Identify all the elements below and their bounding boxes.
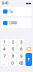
button[interactable]: 9 — [17, 53, 24, 59]
button[interactable]: 4 — [1, 46, 8, 52]
button[interactable]: Delete — [25, 46, 32, 52]
staticText: 7 — [4, 54, 6, 58]
button[interactable]: To — [1, 7, 31, 16]
staticText: To — [9, 10, 13, 13]
button[interactable]: Send — [25, 53, 32, 66]
button[interactable]: 5 — [9, 46, 16, 52]
staticText: 4 — [3, 47, 6, 51]
button[interactable]: 1 — [1, 39, 8, 45]
button[interactable]: 0 — [9, 60, 16, 66]
staticText: . — [4, 61, 5, 65]
staticText: ⌫ — [18, 61, 23, 65]
button[interactable]: 6 — [17, 46, 24, 52]
button[interactable]: 2 — [9, 39, 16, 45]
staticText: 3 — [20, 40, 22, 44]
staticText: 0 — [11, 61, 14, 65]
staticText: 6 — [20, 47, 22, 51]
staticText: 9 — [20, 54, 22, 58]
button[interactable]: 8 — [9, 53, 16, 59]
staticText: 5 — [12, 47, 14, 51]
button[interactable]: ⌫ — [17, 60, 24, 66]
button[interactable]: 7 — [1, 53, 8, 59]
staticText: 1 — [4, 40, 6, 44]
button[interactable]: 3 — [17, 39, 24, 45]
button[interactable]: 1,000 — [1, 18, 31, 28]
staticText: 8 — [12, 54, 14, 58]
staticText: 9:41 — [2, 2, 8, 5]
staticText: 2 — [12, 40, 14, 44]
button[interactable]: . — [1, 60, 8, 66]
staticText: 1,000 — [9, 21, 17, 25]
